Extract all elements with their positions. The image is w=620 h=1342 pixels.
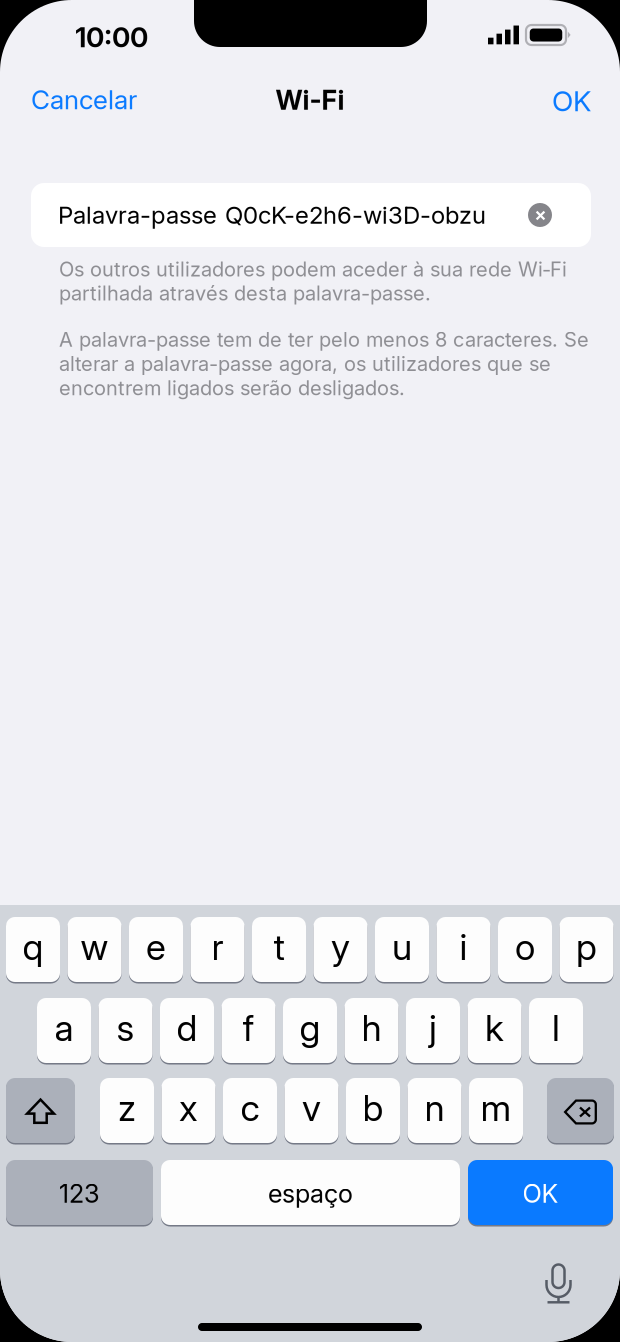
staticText: A palavra-passe tem de ter pelo menos 8 … (59, 327, 589, 400)
button[interactable]: b (346, 1078, 400, 1143)
button[interactable]: Maiúsculas (6, 1078, 75, 1143)
button[interactable]: OK (539, 74, 604, 128)
button[interactable]: Ditado (543, 1261, 574, 1305)
staticText: n (424, 1086, 444, 1130)
button[interactable]: n (407, 1078, 461, 1143)
staticText: f (242, 1006, 254, 1050)
button[interactable]: i (436, 917, 490, 982)
staticText: x (179, 1086, 198, 1130)
button[interactable]: OK (468, 1160, 613, 1225)
staticText: g (299, 1006, 320, 1050)
button[interactable]: Cancelar (18, 74, 150, 125)
staticText: h (361, 1006, 381, 1050)
staticText: espaço (268, 1178, 353, 1209)
staticText: Wi‑Fi (275, 84, 344, 116)
button[interactable]: k (467, 998, 521, 1063)
staticText: z (118, 1086, 136, 1130)
staticText: Cancelar (31, 84, 137, 115)
button[interactable]: Limpar texto (518, 191, 562, 239)
button[interactable]: y (313, 917, 367, 982)
staticText: a (54, 1006, 73, 1050)
button[interactable]: l (529, 998, 583, 1063)
staticText: OK (522, 1178, 558, 1209)
button[interactable]: f (221, 998, 275, 1063)
button[interactable]: w (67, 917, 121, 982)
staticText: y (331, 925, 350, 969)
button[interactable]: e (129, 917, 183, 982)
staticText: c (240, 1086, 259, 1130)
button[interactable]: t (252, 917, 306, 982)
staticText: i (459, 925, 467, 969)
staticText: Palavra-passe (58, 200, 217, 229)
button[interactable]: v (284, 1078, 338, 1143)
button[interactable]: q (6, 917, 60, 982)
staticText: b (362, 1086, 383, 1130)
staticText: Os outros utilizadores podem aceder à su… (59, 257, 567, 305)
button[interactable]: m (469, 1078, 523, 1143)
staticText: Q0cK-e2h6-wi3D-obzu (225, 200, 486, 229)
staticText: t (273, 925, 284, 969)
button[interactable]: a (37, 998, 91, 1063)
button[interactable]: p (559, 917, 613, 982)
staticText: u (392, 925, 412, 969)
staticText: o (515, 925, 535, 969)
staticText: r (211, 925, 223, 969)
button[interactable]: Apagar (547, 1078, 614, 1143)
button[interactable]: d (160, 998, 214, 1063)
staticText: 123 (59, 1178, 100, 1209)
button[interactable]: h (344, 998, 398, 1063)
button[interactable]: x (161, 1078, 215, 1143)
staticText: 10:00 (75, 20, 148, 54)
button[interactable]: j (406, 998, 460, 1063)
button[interactable]: s (98, 998, 152, 1063)
staticText: p (576, 925, 597, 969)
staticText: d (176, 1006, 197, 1050)
staticText: e (146, 925, 166, 969)
button[interactable]: 123 (6, 1160, 153, 1225)
staticText: s (116, 1006, 134, 1050)
staticText: q (22, 925, 43, 969)
button[interactable]: espaço (161, 1160, 460, 1225)
button[interactable]: o (498, 917, 552, 982)
staticText: l (552, 1006, 560, 1050)
button[interactable]: r (190, 917, 244, 982)
button[interactable]: z (100, 1078, 154, 1143)
button[interactable]: g (283, 998, 337, 1063)
staticText: OK (552, 84, 591, 118)
staticText: j (429, 1006, 437, 1050)
staticText: k (485, 1006, 504, 1050)
staticText: w (80, 925, 108, 969)
button[interactable]: u (375, 917, 429, 982)
button[interactable]: c (223, 1078, 277, 1143)
staticText: m (480, 1086, 511, 1130)
staticText: v (302, 1086, 321, 1130)
